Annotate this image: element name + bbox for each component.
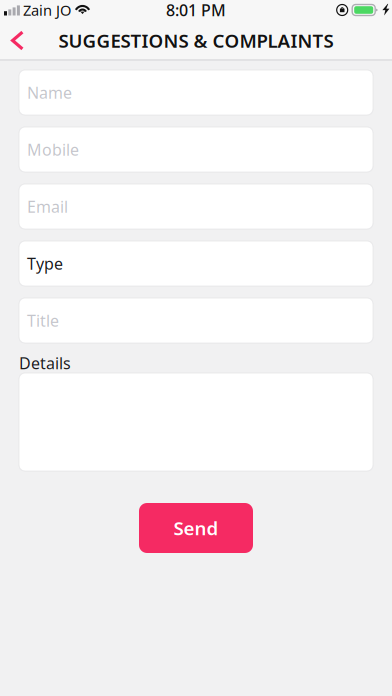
button[interactable]: Email xyxy=(19,184,373,229)
button[interactable]: Mobile xyxy=(19,127,373,172)
staticText: Name xyxy=(27,82,72,103)
staticText: Type xyxy=(27,253,63,274)
staticText: Zain JO xyxy=(23,0,71,20)
button[interactable]: Name xyxy=(19,70,373,115)
button[interactable]: Title xyxy=(19,298,373,343)
staticText: Send xyxy=(173,516,218,540)
staticText: SUGGESTIONS & COMPLAINTS xyxy=(58,28,333,53)
staticText: Title xyxy=(27,310,59,331)
staticText: Mobile xyxy=(27,139,79,160)
staticText: Details xyxy=(19,352,71,374)
button[interactable]: Send xyxy=(139,503,253,553)
button[interactable]: Back xyxy=(0,20,38,60)
button[interactable]: Type xyxy=(19,241,373,286)
staticText: Email xyxy=(27,196,68,217)
staticText: 8:01 PM xyxy=(166,0,226,21)
